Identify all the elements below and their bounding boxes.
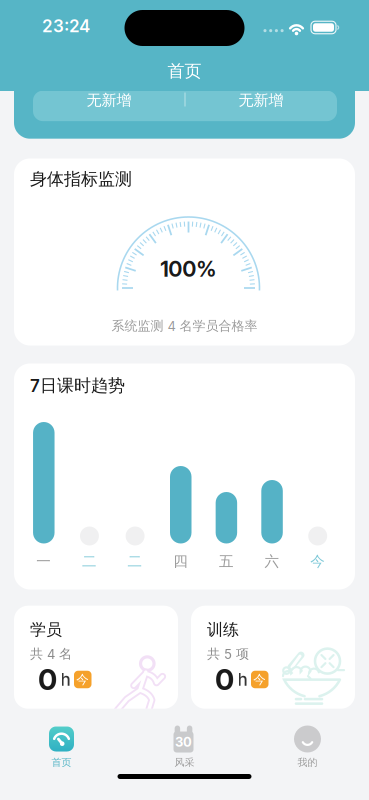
staticText: 训练 xyxy=(207,620,239,640)
staticText: 学员 xyxy=(30,620,62,640)
button[interactable]: 无新增 xyxy=(34,85,184,115)
staticText: 30 xyxy=(175,734,192,750)
button[interactable]: 训练 xyxy=(191,606,355,709)
staticText: 四 xyxy=(173,553,188,570)
staticText: 今 xyxy=(310,553,325,570)
staticText: 今 xyxy=(76,672,89,687)
staticText: 身体指标监测 xyxy=(30,169,132,189)
staticText: 0 xyxy=(215,662,234,697)
button[interactable]: 30 xyxy=(139,710,229,770)
button[interactable]: 学员 xyxy=(14,606,178,709)
staticText: 共 4 名 xyxy=(30,646,72,662)
button[interactable]: 首页 xyxy=(16,710,106,770)
staticText: 一 xyxy=(36,553,51,570)
staticText: 无新增 xyxy=(238,91,283,109)
staticText: 共 5 项 xyxy=(207,646,249,662)
staticText: 二 xyxy=(82,553,97,570)
staticText: 六 xyxy=(265,553,280,570)
staticText: 今 xyxy=(253,672,266,687)
staticText: 系统监测 4 名学员合格率 xyxy=(111,318,257,334)
staticText: 7日课时趋势 xyxy=(30,375,125,396)
staticText: 我的 xyxy=(297,756,317,769)
staticText: h xyxy=(60,669,70,690)
staticText: 首页 xyxy=(51,756,71,769)
staticText: 首页 xyxy=(167,61,201,81)
staticText: h xyxy=(237,669,247,690)
staticText: 五 xyxy=(219,553,234,570)
staticText: 100% xyxy=(160,257,216,281)
staticText: 二 xyxy=(128,553,143,570)
staticText: 0 xyxy=(38,662,57,697)
button[interactable]: 无新增 xyxy=(186,85,336,115)
button[interactable]: 我的 xyxy=(262,710,352,770)
staticText: 无新增 xyxy=(86,91,131,109)
staticText: 风采 xyxy=(174,756,194,769)
staticText: 23:24 xyxy=(42,16,90,36)
